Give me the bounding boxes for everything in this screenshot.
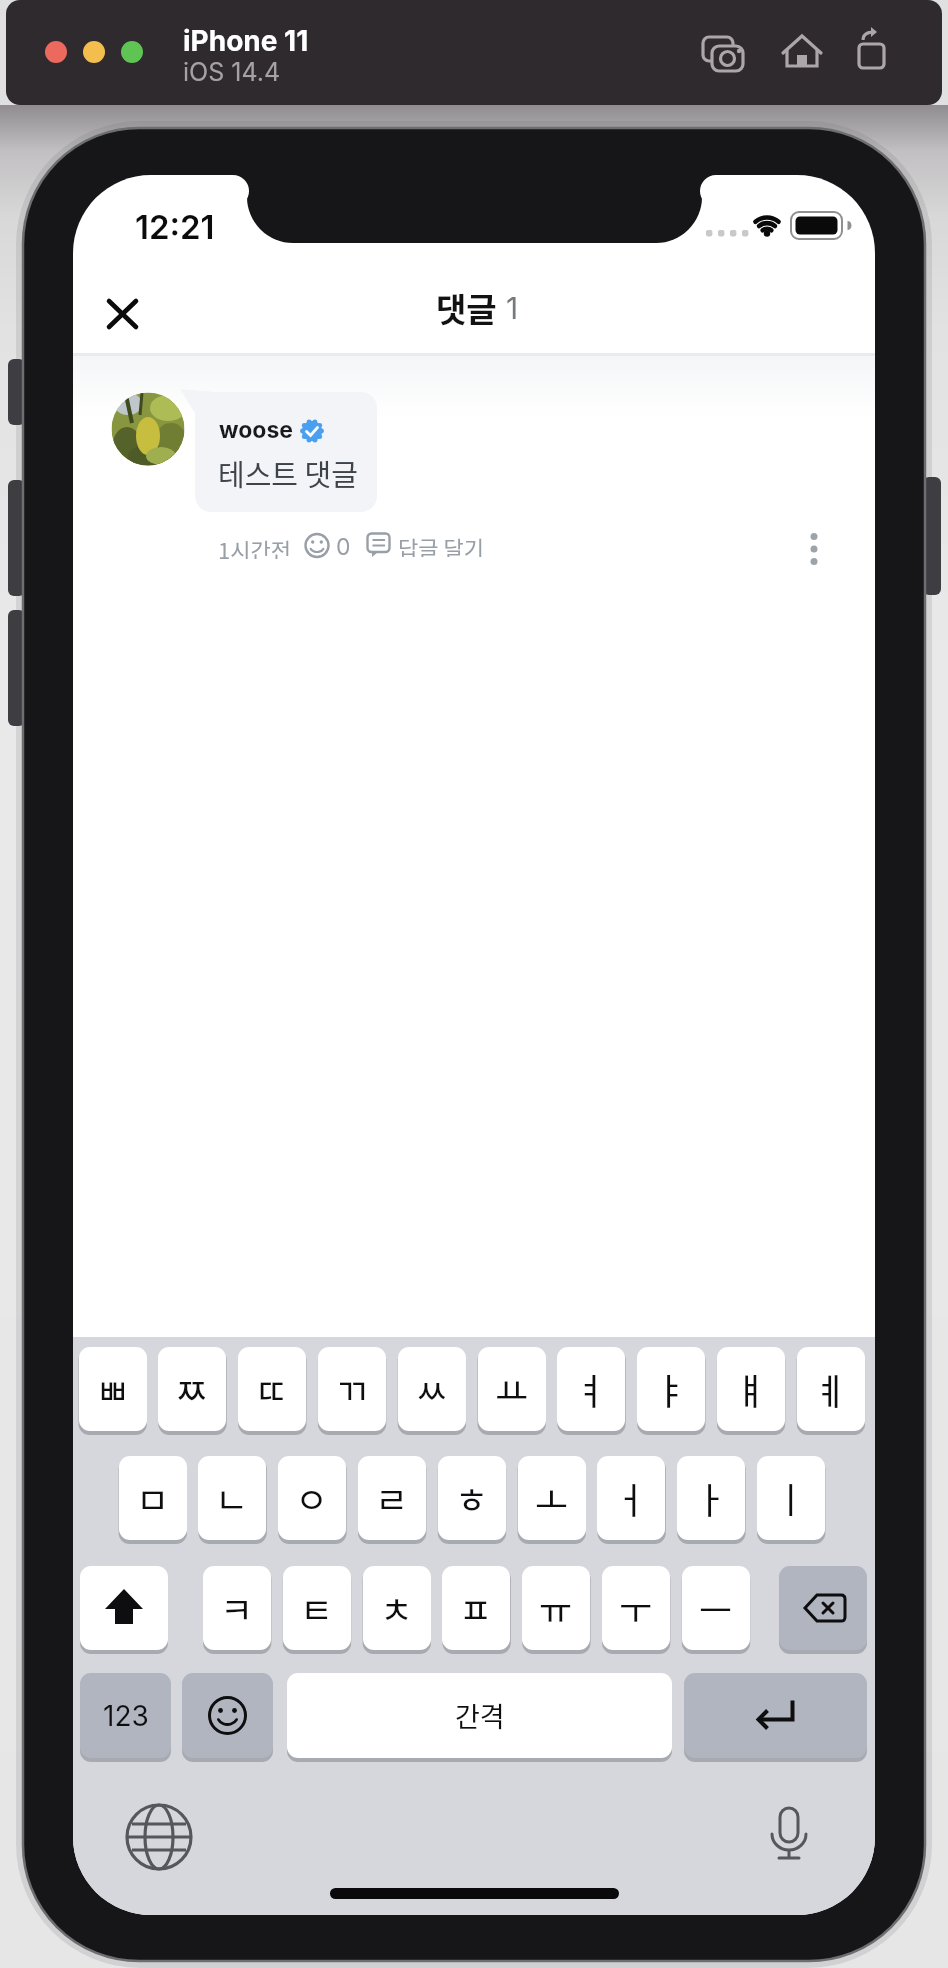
- staticText: ㅎ: [455, 1472, 489, 1524]
- staticText: ㅉ: [175, 1363, 209, 1415]
- button[interactable]: ㄲ: [318, 1347, 386, 1431]
- button[interactable]: ㄴ: [198, 1456, 266, 1540]
- button[interactable]: [80, 1566, 168, 1650]
- button[interactable]: ㅠ: [522, 1566, 590, 1650]
- button[interactable]: [778, 32, 826, 76]
- staticText: 댓글: [436, 284, 497, 332]
- button[interactable]: ㄹ: [358, 1456, 426, 1540]
- staticText: ㅋ: [220, 1582, 254, 1634]
- button[interactable]: ㅇ: [278, 1456, 346, 1540]
- button[interactable]: 간격: [287, 1673, 672, 1758]
- staticText: ㅊ: [380, 1582, 414, 1634]
- staticText: ㅣ: [774, 1472, 808, 1524]
- button[interactable]: ㅜ: [602, 1566, 670, 1650]
- staticText: 1: [506, 290, 519, 326]
- staticText: 테스트 댓글: [218, 452, 358, 489]
- staticText: woose: [219, 416, 294, 444]
- button[interactable]: [698, 32, 748, 76]
- staticText: ㅜ: [619, 1582, 653, 1634]
- button[interactable]: ㅋ: [203, 1566, 271, 1650]
- staticText: ㅁ: [136, 1472, 170, 1524]
- staticText: ㅏ: [694, 1472, 728, 1524]
- button[interactable]: ㅡ: [682, 1566, 750, 1650]
- staticText: iPhone 11: [183, 24, 309, 56]
- staticText: ㅛ: [495, 1363, 529, 1415]
- staticText: ㅖ: [814, 1363, 848, 1415]
- button[interactable]: ㅌ: [283, 1566, 351, 1650]
- button[interactable]: ㅕ: [557, 1347, 625, 1431]
- staticText: ㄴ: [215, 1472, 249, 1524]
- button[interactable]: ㅁ: [119, 1456, 187, 1540]
- button[interactable]: [45, 41, 67, 63]
- button[interactable]: ㅎ: [438, 1456, 506, 1540]
- button[interactable]: [182, 1673, 273, 1758]
- staticText: 1시간전: [218, 533, 291, 559]
- staticText: ㅓ: [614, 1472, 648, 1524]
- staticText: 답글 달기: [398, 531, 484, 557]
- button[interactable]: 답글 달기: [362, 526, 487, 566]
- staticText: ㅍ: [459, 1582, 493, 1634]
- button[interactable]: ㅃ: [79, 1347, 147, 1431]
- button[interactable]: ㅊ: [363, 1566, 431, 1650]
- button[interactable]: [850, 32, 896, 76]
- staticText: ㅃ: [96, 1363, 130, 1415]
- staticText: ㅆ: [415, 1363, 449, 1415]
- staticText: ㄲ: [335, 1363, 369, 1415]
- staticText: ㅗ: [535, 1472, 569, 1524]
- button[interactable]: [121, 41, 143, 63]
- button[interactable]: [684, 1673, 867, 1758]
- button[interactable]: 123: [80, 1673, 171, 1758]
- button[interactable]: [300, 528, 360, 564]
- button[interactable]: [794, 528, 834, 572]
- button[interactable]: ㅑ: [637, 1347, 705, 1431]
- button[interactable]: [83, 41, 105, 63]
- button[interactable]: ㅣ: [757, 1456, 825, 1540]
- button[interactable]: ㅏ: [677, 1456, 745, 1540]
- button[interactable]: [760, 1804, 820, 1870]
- button[interactable]: [126, 1804, 192, 1870]
- button[interactable]: ㅉ: [158, 1347, 226, 1431]
- button[interactable]: [98, 289, 148, 339]
- staticText: ㅌ: [300, 1582, 334, 1634]
- button[interactable]: [779, 1566, 867, 1650]
- button[interactable]: ㅓ: [597, 1456, 665, 1540]
- staticText: ㅡ: [699, 1582, 733, 1634]
- button[interactable]: ㅆ: [398, 1347, 466, 1431]
- staticText: 간격: [455, 1696, 505, 1735]
- button[interactable]: ㅛ: [478, 1347, 546, 1431]
- staticText: ㄸ: [255, 1363, 289, 1415]
- button[interactable]: ㅍ: [442, 1566, 510, 1650]
- staticText: ㅑ: [654, 1363, 688, 1415]
- staticText: 12:21: [135, 207, 215, 241]
- button[interactable]: ㅖ: [797, 1347, 865, 1431]
- staticText: ㅕ: [574, 1363, 608, 1415]
- staticText: ㄹ: [375, 1472, 409, 1524]
- staticText: ㅒ: [734, 1363, 768, 1415]
- staticText: ㅇ: [295, 1472, 329, 1524]
- staticText: 0: [336, 533, 351, 559]
- staticText: ㅠ: [539, 1582, 573, 1634]
- staticText: iOS 14.4: [183, 57, 281, 85]
- staticText: 123: [103, 1699, 149, 1733]
- button[interactable]: ㄸ: [238, 1347, 306, 1431]
- button[interactable]: ㅒ: [717, 1347, 785, 1431]
- button[interactable]: ㅗ: [518, 1456, 586, 1540]
